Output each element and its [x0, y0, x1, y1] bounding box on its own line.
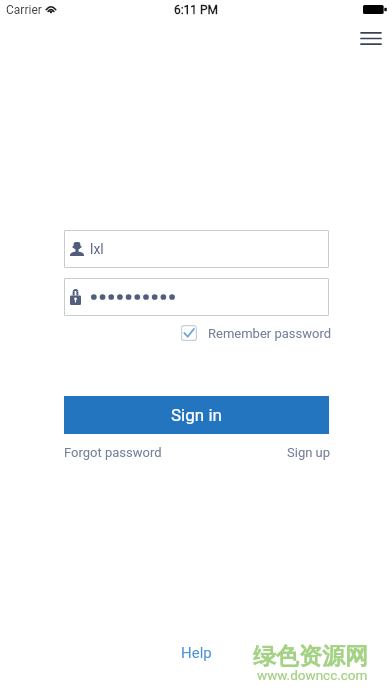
button[interactable]: Sign up — [287, 445, 331, 460]
staticText: lxl — [90, 241, 104, 257]
button[interactable] — [64, 278, 329, 316]
button[interactable]: Remember password — [181, 325, 332, 341]
button[interactable]: Help — [181, 644, 212, 662]
staticText: Remember password — [208, 326, 332, 341]
staticText: www.downcc.com — [257, 667, 368, 683]
button[interactable]: lxl — [64, 230, 329, 268]
button[interactable]: Menu — [352, 24, 390, 52]
staticText: Sign in — [171, 405, 222, 425]
button[interactable]: Forgot password — [64, 445, 162, 460]
button[interactable]: Sign in — [64, 396, 329, 434]
staticText: 6:11 PM — [0, 3, 392, 17]
staticText: 绿色资源网 — [253, 642, 368, 671]
staticText: Carrier — [6, 3, 42, 17]
